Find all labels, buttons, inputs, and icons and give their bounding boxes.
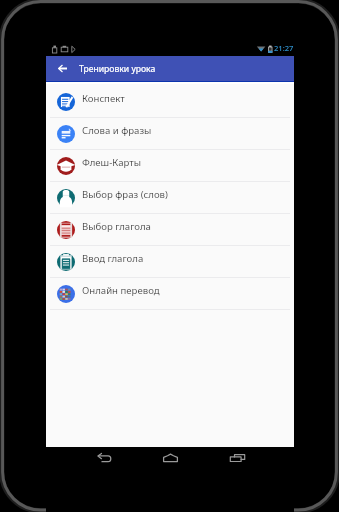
button[interactable]: Выбор глагола bbox=[46, 214, 294, 245]
button[interactable]: Back bbox=[86, 447, 122, 469]
staticText: 21:27 bbox=[274, 43, 294, 53]
button[interactable]: Ввод глагола bbox=[46, 246, 294, 277]
button[interactable]: Флеш-Карты bbox=[46, 150, 294, 181]
staticText: Выбор глагола bbox=[82, 220, 151, 233]
button[interactable]: Слова и фразы bbox=[46, 118, 294, 149]
staticText: Онлайн перевод bbox=[82, 284, 160, 297]
button[interactable]: Онлайн перевод bbox=[46, 278, 294, 309]
staticText: Флеш-Карты bbox=[82, 156, 141, 169]
button[interactable]: Home bbox=[152, 447, 188, 469]
staticText: Выбор фраз (слов) bbox=[82, 188, 168, 201]
staticText: Ввод глагола bbox=[82, 252, 144, 265]
staticText: Слова и фразы bbox=[82, 124, 152, 137]
button[interactable]: Конспект bbox=[46, 86, 294, 117]
button[interactable]: Выбор фраз (слов) bbox=[46, 182, 294, 213]
button[interactable]: Back bbox=[55, 56, 69, 81]
staticText: Тренировки урока bbox=[79, 63, 156, 75]
button[interactable]: Recent apps bbox=[219, 447, 255, 469]
staticText: Конспект bbox=[82, 92, 125, 105]
